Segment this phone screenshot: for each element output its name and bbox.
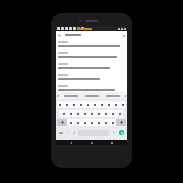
button[interactable]: Recents bbox=[107, 140, 117, 145]
button[interactable] bbox=[67, 119, 74, 126]
button[interactable] bbox=[58, 61, 125, 72]
button[interactable] bbox=[67, 110, 74, 117]
button[interactable] bbox=[57, 101, 63, 108]
button[interactable] bbox=[57, 128, 65, 137]
button[interactable]: Period bbox=[110, 128, 116, 137]
button[interactable]: Back bbox=[56, 32, 63, 39]
button[interactable]: Back bbox=[66, 140, 76, 145]
button[interactable] bbox=[74, 110, 81, 117]
button[interactable] bbox=[91, 101, 98, 108]
button[interactable] bbox=[109, 119, 116, 126]
button[interactable] bbox=[102, 119, 109, 126]
button[interactable] bbox=[81, 119, 88, 126]
button[interactable] bbox=[70, 101, 77, 108]
button[interactable] bbox=[119, 101, 126, 108]
button[interactable]: Home bbox=[87, 140, 97, 145]
button[interactable] bbox=[58, 72, 125, 83]
button[interactable] bbox=[77, 101, 84, 108]
button[interactable]: Shift bbox=[57, 119, 67, 126]
button[interactable] bbox=[60, 92, 81, 99]
button[interactable]: Voice input bbox=[56, 92, 60, 99]
button[interactable]: More suggestions bbox=[123, 92, 127, 99]
button[interactable]: Clear bbox=[120, 32, 127, 39]
button[interactable]: Backspace bbox=[116, 119, 126, 126]
button[interactable] bbox=[98, 101, 105, 108]
button[interactable] bbox=[95, 119, 102, 126]
button[interactable] bbox=[116, 110, 123, 117]
button[interactable] bbox=[84, 101, 91, 108]
button[interactable] bbox=[88, 119, 95, 126]
button[interactable] bbox=[74, 119, 81, 126]
button[interactable] bbox=[60, 110, 67, 117]
button[interactable] bbox=[63, 101, 70, 108]
button[interactable] bbox=[102, 92, 123, 99]
button[interactable] bbox=[95, 110, 102, 117]
button[interactable] bbox=[105, 101, 112, 108]
button[interactable] bbox=[65, 34, 81, 36]
button[interactable] bbox=[88, 110, 95, 117]
button[interactable] bbox=[112, 101, 119, 108]
button[interactable] bbox=[58, 50, 125, 61]
button[interactable] bbox=[81, 110, 88, 117]
button[interactable]: Comma bbox=[65, 128, 71, 137]
button[interactable] bbox=[58, 39, 125, 50]
button[interactable] bbox=[58, 83, 125, 92]
button[interactable] bbox=[109, 110, 116, 117]
button[interactable]: Emoji bbox=[71, 128, 77, 137]
button[interactable] bbox=[81, 92, 102, 99]
button[interactable]: Search bbox=[116, 128, 126, 137]
button[interactable] bbox=[102, 110, 109, 117]
